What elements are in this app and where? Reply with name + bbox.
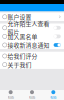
staticText: 加入黑名单 (7, 32, 37, 41)
staticText: 给我们评分 (7, 52, 37, 60)
staticText: 关于我们 (7, 60, 31, 69)
staticText: 标签 (29, 95, 35, 100)
button[interactable]: 给我们评分 (0, 52, 64, 60)
button[interactable]: 账户设置 (0, 12, 64, 21)
button[interactable]: 标签 (43, 90, 64, 100)
button[interactable]: 标签 (21, 90, 43, 100)
button[interactable]: 标签 (0, 90, 21, 100)
button[interactable]: 关于我们 (0, 60, 64, 69)
button[interactable]: 接收新消息通知 (0, 41, 64, 49)
staticText: 标签 (50, 95, 56, 100)
button[interactable]: 加入黑名单 (0, 32, 64, 41)
button[interactable]: 允许陌生人查看照片 (0, 23, 64, 32)
staticText: 接收新消息通知 (7, 41, 49, 49)
staticText: 标签 (8, 95, 14, 100)
staticText: 允许陌生人查看照片 (7, 19, 49, 36)
staticText: 账户设置 (7, 13, 31, 21)
